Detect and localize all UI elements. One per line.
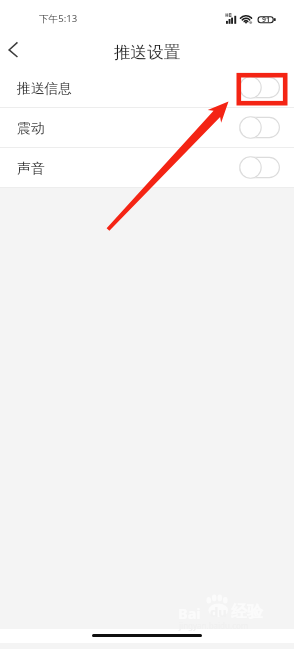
button[interactable]: 震动 [0,108,294,147]
button[interactable]: 推送信息 [0,68,294,107]
button[interactable]: 声音 [0,148,294,187]
staticText: du [210,603,227,621]
staticText: 推送设置 [114,42,180,63]
button[interactable]: Back [0,33,30,68]
staticText: 经验 [231,602,263,622]
staticText: 下午5:13 [39,12,78,25]
staticText: 91 [262,15,271,25]
staticText: 声音 [17,160,45,177]
staticText: jingyan.baidu.com [179,620,249,631]
staticText: 推送信息 [17,80,72,97]
button[interactable]: Toggle [239,76,280,99]
button[interactable]: Toggle [239,116,280,139]
staticText: 震动 [17,120,45,137]
button[interactable]: Toggle [239,156,280,179]
